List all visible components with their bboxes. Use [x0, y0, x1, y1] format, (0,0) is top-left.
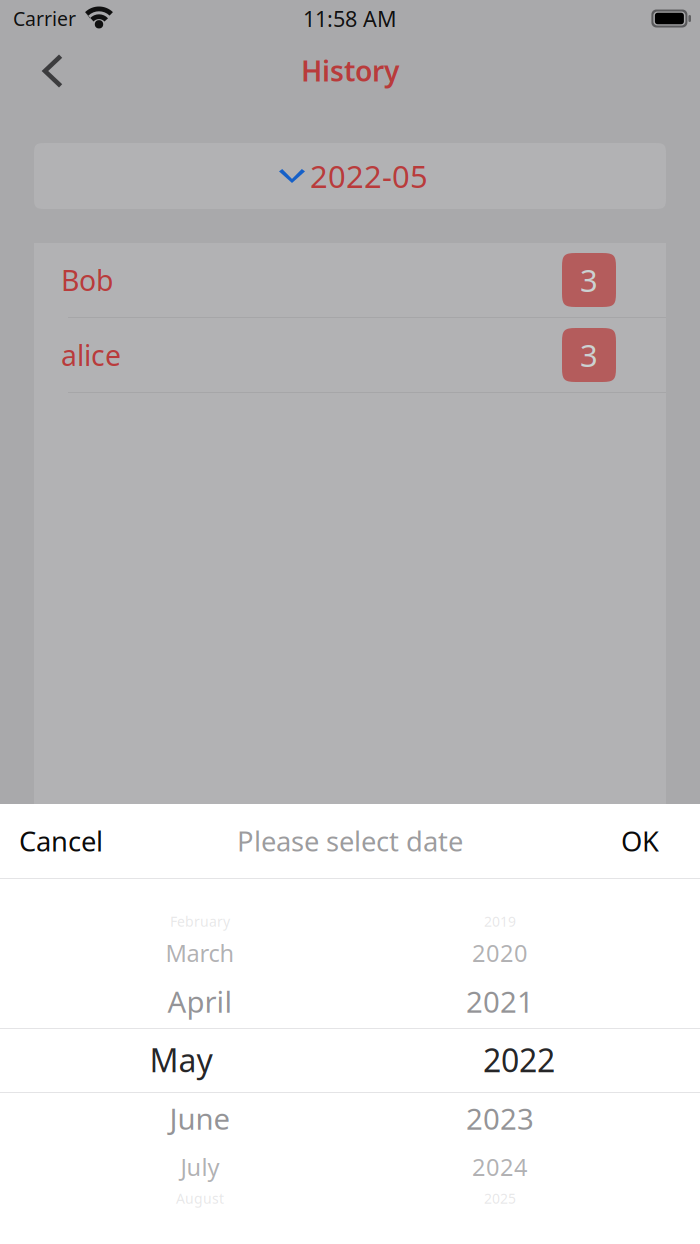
staticText: 3	[580, 259, 598, 301]
button[interactable]: 2022-05	[34, 143, 666, 209]
staticText: August	[176, 1189, 224, 1208]
staticText: Bob	[61, 261, 113, 299]
staticText: 2024	[472, 1151, 528, 1182]
staticText: March	[165, 937, 234, 968]
staticText: 2022	[483, 1039, 555, 1081]
staticText: February	[170, 912, 230, 931]
staticText: 2020	[472, 937, 528, 968]
staticText: Carrier	[13, 6, 76, 31]
staticText: May	[149, 1039, 212, 1081]
button[interactable]: OK	[580, 804, 700, 878]
staticText: History	[301, 52, 399, 89]
button[interactable]: alice	[34, 318, 666, 392]
staticText: OK	[621, 823, 659, 859]
staticText: 3	[580, 334, 598, 376]
staticText: 2022-05	[310, 155, 428, 197]
staticText: April	[167, 982, 232, 1021]
staticText: 2023	[466, 1099, 534, 1138]
staticText: Please select date	[237, 823, 463, 859]
staticText: 2025	[484, 1189, 516, 1208]
button[interactable]: Cancel	[0, 804, 122, 878]
staticText: 2021	[466, 982, 534, 1021]
staticText: 2019	[484, 912, 516, 931]
staticText: alice	[61, 336, 121, 374]
button[interactable]: Bob	[34, 243, 666, 317]
staticText: June	[169, 1099, 230, 1138]
staticText: Cancel	[19, 823, 103, 859]
staticText: July	[180, 1151, 219, 1182]
button[interactable]: Back	[0, 37, 88, 119]
staticText: 11:58 AM	[303, 4, 397, 33]
